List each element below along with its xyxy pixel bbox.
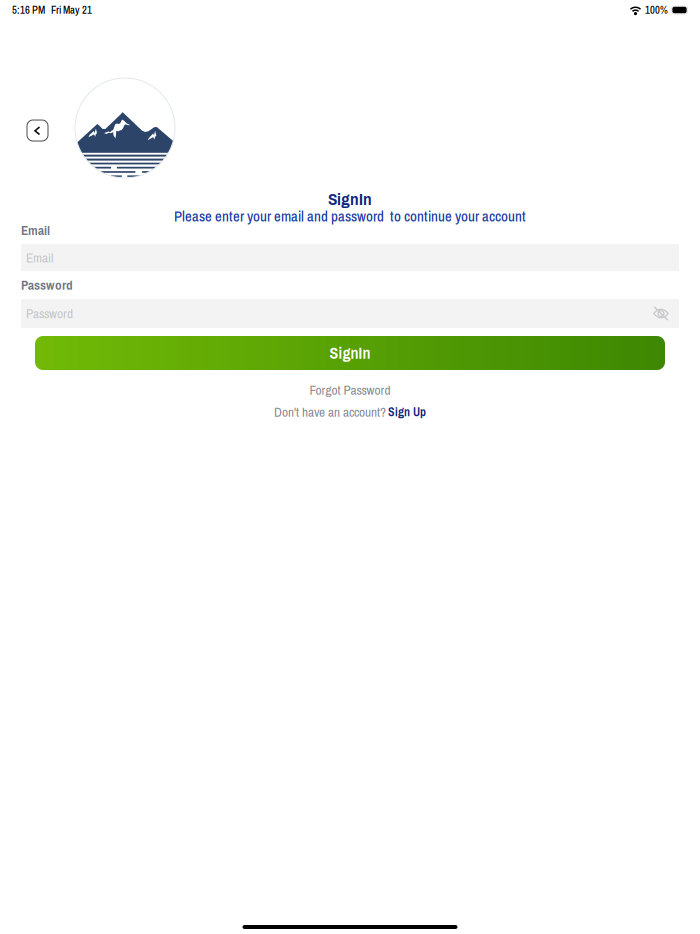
staticText: Sign Up bbox=[388, 404, 426, 420]
button[interactable]: SignIn bbox=[35, 336, 665, 370]
staticText: Email bbox=[26, 249, 53, 267]
staticText: SignIn bbox=[329, 342, 370, 364]
staticText: Don't have an account? bbox=[274, 403, 386, 421]
staticText: Fri May 21 bbox=[51, 3, 92, 17]
staticText: Password bbox=[26, 304, 73, 322]
staticText: SignIn bbox=[328, 187, 372, 210]
staticText: Forgot Password bbox=[309, 381, 390, 399]
staticText: 5:16 PM bbox=[12, 3, 45, 17]
button[interactable]: Back bbox=[27, 120, 48, 141]
button[interactable]: Forgot Password bbox=[309, 381, 390, 399]
button[interactable]: Show password bbox=[653, 305, 679, 321]
staticText: Email bbox=[21, 221, 50, 239]
staticText: Please enter your email and password to … bbox=[174, 206, 526, 226]
staticText: Password bbox=[21, 276, 73, 294]
staticText: 100% bbox=[645, 3, 668, 17]
button[interactable]: Sign Up bbox=[388, 404, 426, 420]
